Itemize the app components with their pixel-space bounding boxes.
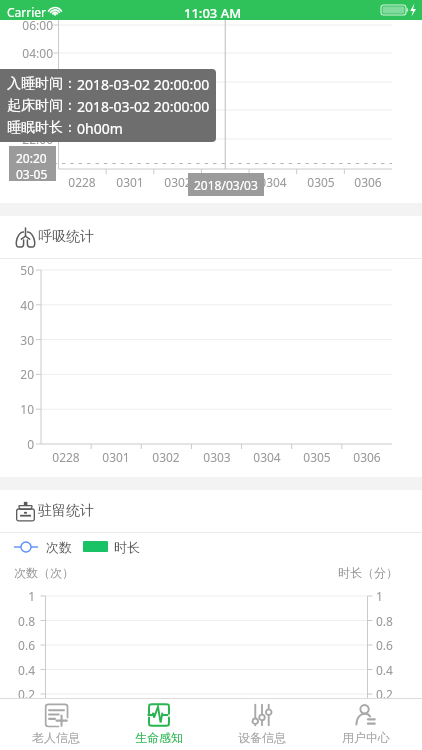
staticText: Carrier	[7, 4, 47, 20]
staticText: 20	[0, 366, 34, 382]
staticText: 2018-03-02 20:00:00	[77, 97, 210, 116]
staticText: 0.4	[0, 662, 35, 678]
other: 用户中心	[354, 703, 378, 727]
other: 生命感知	[147, 703, 171, 727]
staticText: 0.8	[0, 613, 35, 629]
staticText: 0301	[96, 449, 136, 465]
staticText: 0.6	[376, 637, 414, 653]
staticText: 0306	[347, 449, 387, 465]
staticText: 0302	[146, 449, 186, 465]
button[interactable]: 生命感知	[107, 699, 210, 750]
staticText: 时长（分）	[338, 565, 398, 580]
other: 设备信息	[250, 703, 274, 727]
staticText: 0301	[110, 174, 150, 190]
staticText: 0306	[348, 174, 388, 190]
staticText: 0h00m	[77, 119, 123, 138]
staticText: 设备信息	[238, 730, 286, 745]
button[interactable]: 老人信息	[4, 699, 107, 750]
staticText: 40	[0, 297, 34, 313]
staticText: 老人信息	[32, 730, 80, 745]
staticText: 11:03 AM	[184, 4, 242, 22]
staticText: 02:00	[9, 74, 53, 90]
button[interactable]: 用户中心	[314, 699, 418, 750]
staticText: 时长	[114, 539, 140, 555]
staticText: 0.2	[376, 686, 414, 702]
staticText: 用户中心	[342, 730, 390, 745]
staticText: 0.4	[376, 662, 414, 678]
staticText: 0303	[197, 449, 237, 465]
staticText: 1	[0, 588, 35, 604]
staticText: 0.2	[0, 686, 35, 702]
staticText: 0303	[205, 174, 245, 190]
staticText: 10	[0, 401, 34, 417]
staticText: 驻留统计	[38, 502, 94, 520]
staticText: 生命感知	[135, 730, 183, 745]
staticText: 04:00	[9, 45, 53, 61]
staticText: 0228	[62, 174, 102, 190]
staticText: 睡眠时长：	[7, 119, 77, 137]
staticText: 0304	[253, 174, 293, 190]
staticText: 入睡时间：	[7, 75, 77, 93]
staticText: 起床时间：	[7, 97, 77, 115]
staticText: 30	[0, 332, 34, 348]
staticText: 2018/03/03	[194, 177, 258, 193]
staticText: 0305	[297, 449, 337, 465]
button[interactable]: 设备信息	[210, 699, 314, 750]
staticText: 1	[376, 588, 414, 604]
staticText: 呼吸统计	[38, 228, 94, 246]
staticText: 0.6	[0, 637, 35, 653]
staticText: 0228	[46, 449, 86, 465]
staticText: 0	[0, 436, 34, 452]
staticText: 06:00	[9, 17, 53, 33]
staticText: 03-05	[16, 166, 48, 181]
staticText: 0.8	[376, 613, 414, 629]
staticText: 0302	[158, 174, 198, 190]
staticText: 20:20	[16, 150, 47, 166]
staticText: 22:00	[9, 131, 53, 147]
staticText: 次数	[46, 539, 72, 555]
staticText: 次数（次）	[14, 565, 74, 580]
staticText: 50	[0, 262, 34, 278]
staticText: 0305	[301, 174, 341, 190]
other: 老人信息	[44, 703, 68, 727]
staticText: 0304	[247, 449, 287, 465]
staticText: 2018-03-02 20:00:00	[77, 75, 210, 94]
staticText: 00:00	[9, 102, 53, 118]
